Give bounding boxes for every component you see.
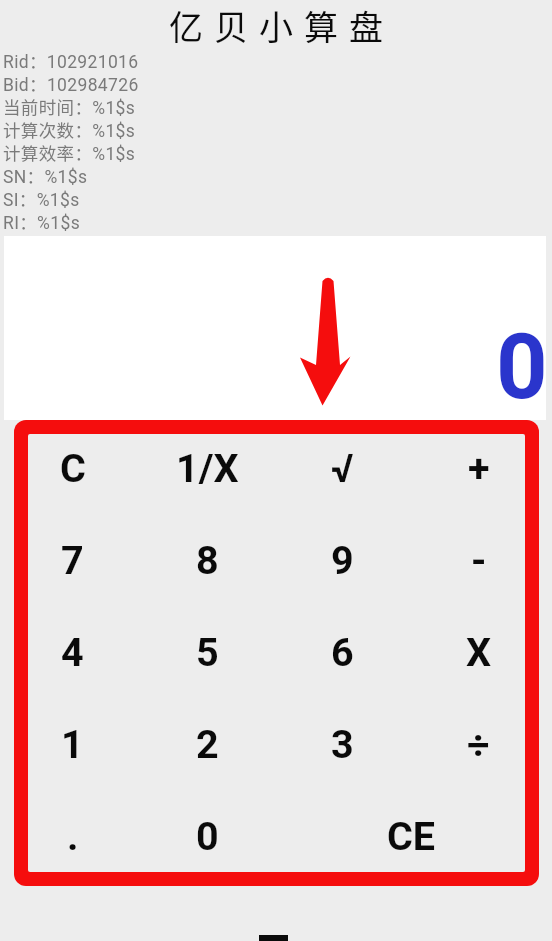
staticText: + [468,445,490,491]
button[interactable]: 2 [140,698,275,790]
staticText: 5 [196,629,219,675]
button[interactable]: ÷ [411,698,546,790]
button[interactable]: . [5,790,140,882]
staticText: 3 [331,721,354,767]
button[interactable]: 6 [275,606,410,698]
staticText: 2 [196,721,219,767]
staticText: CE [387,813,436,859]
button[interactable]: C [5,422,140,514]
staticText: Rid：102921016 [3,48,139,71]
button[interactable]: + [411,422,546,514]
button[interactable]: 1/X [140,422,275,514]
button[interactable]: - [411,514,546,606]
staticText: . [67,813,79,859]
button[interactable]: √ [275,422,410,514]
button[interactable]: 1 [5,698,140,790]
staticText: ÷ [467,721,490,767]
staticText: 计算次数：%1$s [3,117,136,140]
staticText: 1 [61,721,84,767]
staticText: 亿贝小算盘 [169,1,394,50]
button[interactable]: X [411,606,546,698]
staticText: 计算效率：%1$s [3,140,136,163]
staticText: 1/X [176,445,239,491]
staticText: C [60,445,86,491]
button[interactable]: CE [344,790,479,882]
staticText: RI：%1$s [3,209,81,232]
staticText: √ [331,445,354,491]
button[interactable]: 8 [140,514,275,606]
staticText: - [471,537,487,583]
staticText: 7 [61,537,84,583]
staticText: Bid：102984726 [3,71,139,94]
button[interactable]: 0 [140,790,275,882]
button[interactable]: 4 [5,606,140,698]
staticText: X [466,629,492,675]
staticText: 8 [196,537,219,583]
staticText: SI：%1$s [3,186,80,209]
button[interactable]: 5 [140,606,275,698]
staticText: 4 [61,629,84,675]
button[interactable]: 9 [275,514,410,606]
button[interactable]: 7 [5,514,140,606]
button[interactable]: 3 [275,698,410,790]
staticText: 当前时间：%1$s [3,94,136,117]
staticText: 0 [496,315,548,420]
staticText: 6 [331,629,354,675]
staticText: 9 [331,537,354,583]
staticText: 0 [196,813,219,859]
staticText: SN：%1$s [3,163,88,186]
